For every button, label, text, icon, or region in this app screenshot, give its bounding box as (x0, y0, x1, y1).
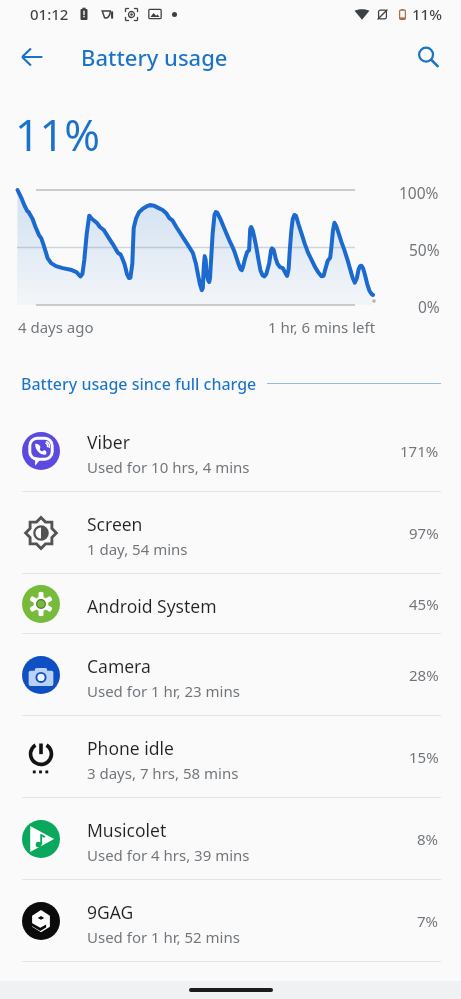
staticText: 8% (417, 829, 439, 849)
button[interactable]: Android System (0, 574, 461, 634)
staticText: 1 day, 54 mins (87, 539, 188, 559)
button[interactable]: Screen (0, 492, 461, 574)
staticText: Viber (87, 430, 130, 454)
staticText: 0% (418, 296, 440, 317)
staticText: Used for 1 hr, 23 mins (87, 681, 240, 701)
staticText: 28% (409, 665, 439, 685)
staticText: 45% (409, 594, 439, 614)
button[interactable]: Search (404, 33, 452, 81)
staticText: Used for 1 hr, 52 mins (87, 927, 240, 947)
staticText: 97% (409, 523, 439, 543)
button[interactable]: Back (8, 33, 56, 81)
staticText: 15% (409, 747, 439, 767)
staticText: 9GAG (87, 900, 134, 924)
staticText: Phone idle (87, 736, 174, 760)
button[interactable]: 9GAG (0, 880, 461, 962)
button[interactable]: Home (189, 988, 273, 992)
staticText: Used for 4 hrs, 39 mins (87, 845, 250, 865)
staticText: Camera (87, 654, 151, 678)
staticText: Battery usage (81, 42, 228, 72)
staticText: 7% (417, 911, 439, 931)
button[interactable]: Camera (0, 634, 461, 716)
staticText: 11% (15, 105, 100, 164)
staticText: 11% (412, 4, 442, 24)
staticText: Musicolet (87, 818, 167, 842)
staticText: 4 days ago (18, 317, 94, 337)
button[interactable]: Musicolet (0, 798, 461, 880)
staticText: 3 days, 7 hrs, 58 mins (87, 763, 239, 783)
button[interactable]: Viber (0, 410, 461, 492)
staticText: Android System (87, 594, 217, 618)
staticText: 50% (409, 239, 440, 260)
button[interactable]: Phone idle (0, 716, 461, 798)
staticText: 171% (400, 441, 439, 461)
staticText: Screen (87, 512, 143, 536)
staticText: 1 hr, 6 mins left (268, 317, 376, 337)
staticText: Battery usage since full charge (21, 373, 257, 395)
staticText: 100% (399, 182, 439, 203)
staticText: Used for 10 hrs, 4 mins (87, 457, 250, 477)
staticText: 01:12 (30, 4, 69, 24)
